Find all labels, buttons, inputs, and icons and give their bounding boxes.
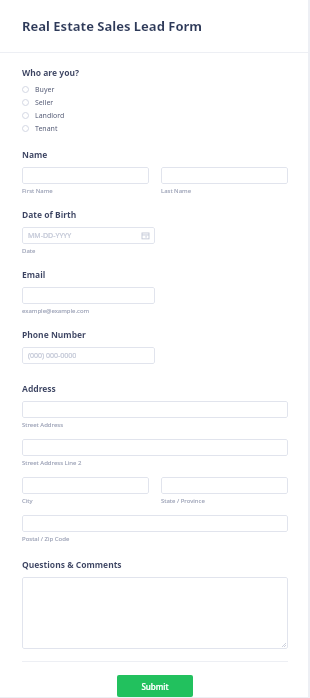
staticText: Last Name — [161, 187, 192, 195]
staticText: First Name — [22, 187, 53, 195]
staticText: example@example.com — [22, 307, 90, 315]
staticText: Street Address Line 2 — [22, 459, 82, 467]
staticText: Postal / Zip Code — [22, 535, 70, 543]
staticText: Who are you? — [22, 67, 80, 79]
staticText: MM-DD-YYYY — [28, 231, 72, 241]
staticText: (000) 000-0000 — [28, 351, 77, 361]
staticText: Submit — [141, 681, 169, 692]
button[interactable] — [161, 167, 288, 184]
button[interactable]: MM-DD-YYYY — [22, 227, 155, 244]
staticText: Questions & Comments — [22, 559, 122, 571]
button[interactable]: Seller — [22, 96, 288, 109]
staticText: Street Address — [22, 421, 64, 429]
button[interactable]: Submit — [117, 675, 193, 697]
staticText: Phone Number — [22, 329, 86, 341]
staticText: Date — [22, 247, 36, 255]
staticText: Real Estate Sales Lead Form — [22, 17, 202, 35]
staticText: City — [22, 497, 33, 505]
button[interactable] — [22, 477, 149, 494]
button[interactable] — [22, 439, 288, 456]
button[interactable]: Landlord — [22, 109, 288, 122]
staticText: Landlord — [35, 111, 65, 121]
staticText: Name — [22, 149, 48, 161]
staticText: Buyer — [35, 85, 55, 95]
staticText: Seller — [35, 98, 54, 108]
staticText: Tenant — [35, 124, 58, 134]
button[interactable]: (000) 000-0000 — [22, 347, 155, 364]
button[interactable] — [22, 167, 149, 184]
staticText: Address — [22, 383, 56, 395]
button[interactable] — [22, 577, 288, 649]
staticText: Email — [22, 269, 46, 281]
staticText: Date of Birth — [22, 209, 77, 221]
button[interactable] — [22, 401, 288, 418]
button[interactable] — [22, 287, 155, 304]
staticText: State / Province — [161, 497, 205, 505]
button[interactable] — [161, 477, 288, 494]
button[interactable] — [22, 515, 288, 532]
button[interactable]: Buyer — [22, 83, 288, 96]
button[interactable]: Tenant — [22, 122, 288, 135]
